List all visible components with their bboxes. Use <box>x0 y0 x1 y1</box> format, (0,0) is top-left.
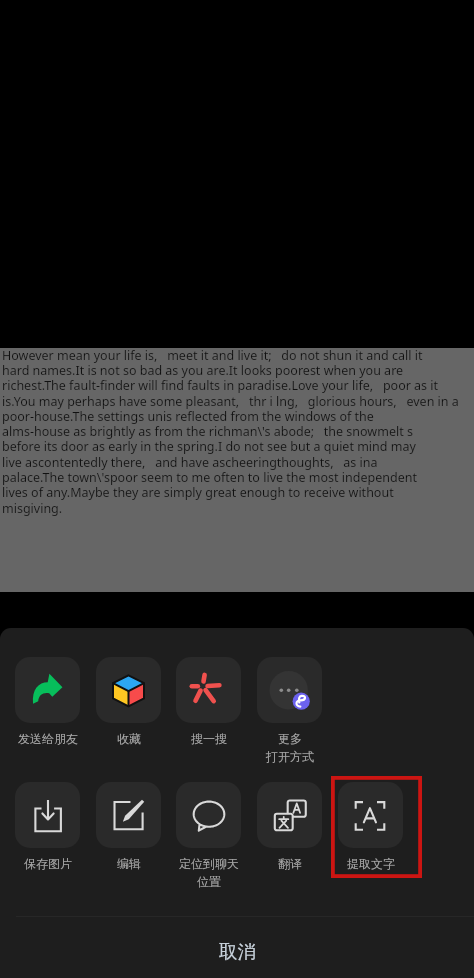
staticText: 打开方式 <box>266 749 314 764</box>
staticText: alms-house as brightly as from the richm… <box>2 424 413 439</box>
staticText: 翻译 <box>278 856 302 871</box>
staticText: lives of any.Maybe they are simply great… <box>2 485 394 500</box>
button[interactable]: 取消 <box>0 917 474 978</box>
button[interactable]: Search <box>176 657 241 746</box>
staticText: 编辑 <box>117 856 141 871</box>
staticText: live ascontentedly there, and have asche… <box>2 455 378 470</box>
staticText: misgiving. <box>2 501 63 516</box>
staticText: is.You may perhaps have some pleasant, t… <box>2 394 459 409</box>
staticText: 更多 <box>278 731 302 746</box>
button[interactable]: Favourite <box>96 657 161 746</box>
button[interactable]: Extract text <box>338 782 403 871</box>
staticText: hard names.It is not so bad as you are.I… <box>2 363 404 378</box>
staticText: richest.The fault-finder will find fault… <box>2 378 439 393</box>
staticText: 位置 <box>197 874 221 889</box>
staticText: palace.The town\'spoor seem to me often … <box>2 470 417 485</box>
button[interactable]: Edit <box>96 782 161 871</box>
button[interactable]: More open methods <box>257 657 322 764</box>
button[interactable]: Translate <box>257 782 322 871</box>
button[interactable]: Send to friend <box>15 657 80 746</box>
staticText: 收藏 <box>117 731 141 746</box>
button[interactable]: Save image <box>15 782 80 871</box>
staticText: 发送给朋友 <box>18 731 78 746</box>
staticText: 定位到聊天 <box>179 856 239 871</box>
staticText: 搜一搜 <box>191 731 227 746</box>
staticText: before its door as early in the spring.I… <box>2 439 416 454</box>
staticText: 提取文字 <box>347 856 395 871</box>
staticText: However mean your life is, meet it and l… <box>2 348 423 363</box>
staticText: poor-house.The settings unis reflected f… <box>2 409 374 424</box>
staticText: 保存图片 <box>24 856 72 871</box>
staticText: 取消 <box>219 940 256 963</box>
button[interactable]: Locate in chat <box>176 782 241 889</box>
